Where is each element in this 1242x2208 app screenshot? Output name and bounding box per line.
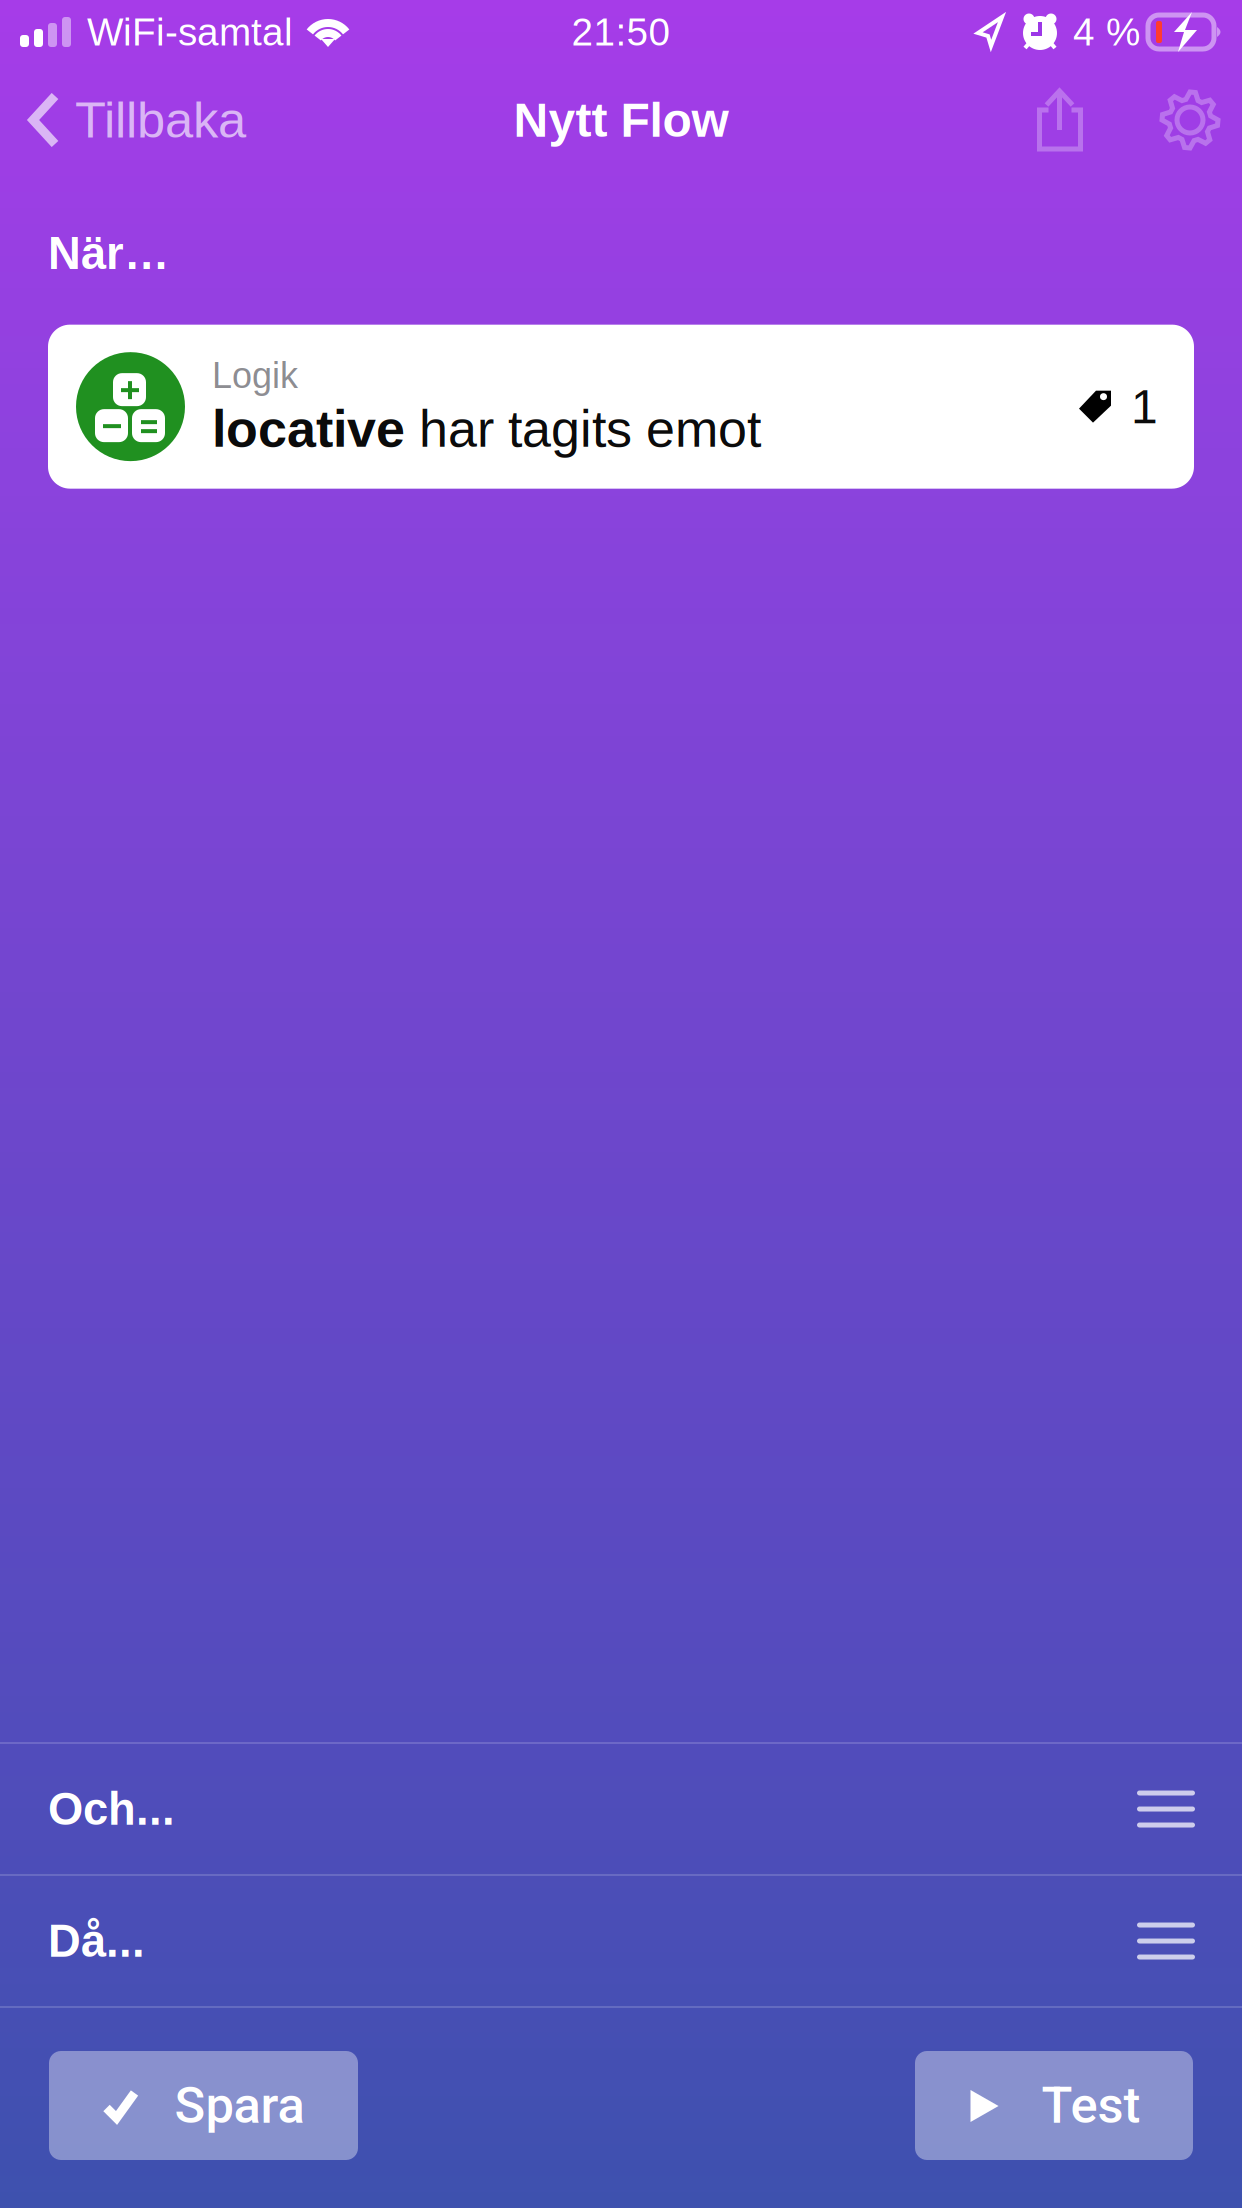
staticText: När… (48, 228, 169, 279)
staticText: 4 % (1073, 10, 1140, 54)
button[interactable]: Tillbaka (0, 72, 270, 168)
staticText: Test (1041, 2076, 1140, 2135)
button[interactable]: Logik (48, 325, 1194, 489)
button[interactable]: Spara (49, 2051, 358, 2160)
staticText: 21:50 (571, 10, 670, 54)
staticText: Spara (174, 2076, 304, 2135)
staticText: 1 (1131, 380, 1158, 433)
staticText: Då... (48, 1916, 145, 1966)
staticText: Tillbaka (75, 92, 246, 148)
button[interactable]: Och... (0, 1744, 1242, 1874)
staticText: locative (212, 400, 405, 458)
button[interactable]: Dela (1010, 74, 1110, 166)
staticText: Logik (212, 355, 298, 396)
button[interactable]: Test (915, 2051, 1193, 2160)
staticText: Och... (48, 1784, 175, 1834)
staticText: WiFi-samtal (87, 10, 293, 54)
button[interactable]: Då... (0, 1876, 1242, 2006)
staticText: har tagits emot (405, 400, 761, 458)
staticText: Nytt Flow (513, 93, 728, 147)
button[interactable]: Inställningar (1110, 75, 1242, 165)
